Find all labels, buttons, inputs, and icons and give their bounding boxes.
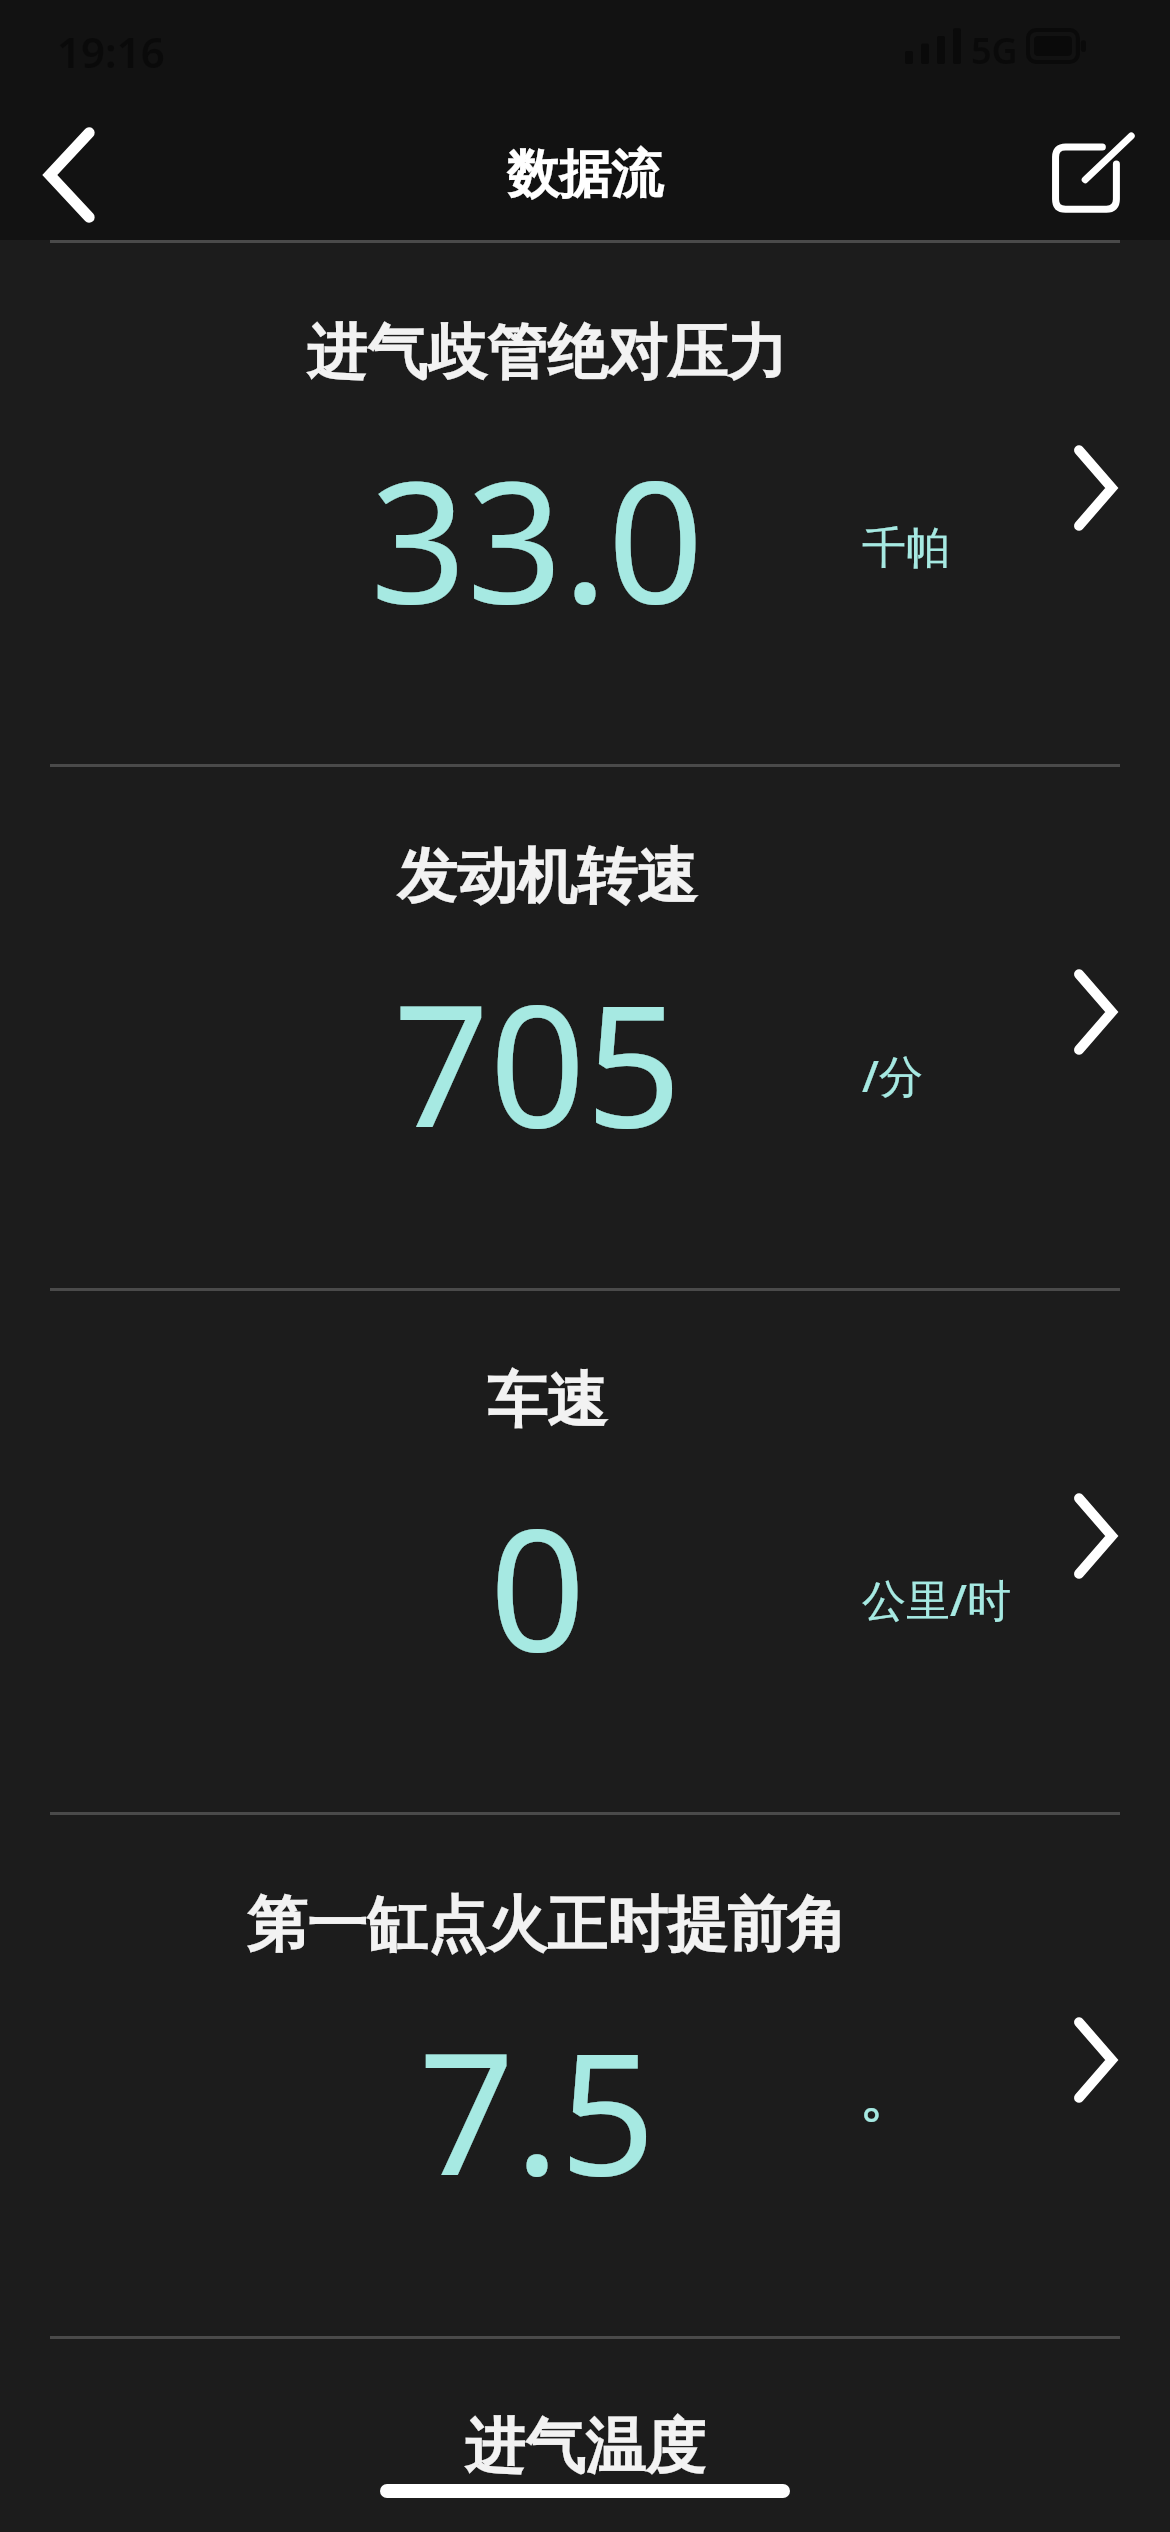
staticText: 第一缸点火正时提前角 bbox=[247, 1887, 847, 1963]
staticText: 进气歧管绝对压力 bbox=[307, 315, 787, 391]
staticText: 0 bbox=[489, 1471, 586, 1700]
staticText: ° bbox=[862, 2093, 881, 2153]
button[interactable]: 进气温度 bbox=[0, 2339, 1170, 2499]
button[interactable]: Back bbox=[14, 120, 124, 230]
staticText: 千帕 bbox=[862, 521, 950, 576]
staticText: 公里/时 bbox=[862, 1569, 1011, 1629]
button[interactable]: Details bbox=[1040, 957, 1150, 1067]
staticText: 7.5 bbox=[418, 1995, 656, 2224]
button[interactable]: 车速 bbox=[0, 1291, 1170, 1812]
button[interactable]: Details bbox=[1040, 2005, 1150, 2115]
staticText: /分 bbox=[862, 1045, 923, 1105]
staticText: 5G bbox=[971, 26, 1018, 66]
button[interactable]: Details bbox=[1040, 1481, 1150, 1591]
button[interactable]: 发动机转速 bbox=[0, 767, 1170, 1288]
button[interactable]: Details bbox=[1040, 433, 1150, 543]
button[interactable]: 第一缸点火正时提前角 bbox=[0, 1815, 1170, 2336]
staticText: 33.0 bbox=[370, 423, 704, 652]
staticText: 数据流 bbox=[507, 142, 663, 208]
staticText: 705 bbox=[393, 947, 682, 1176]
staticText: 车速 bbox=[487, 1363, 607, 1439]
staticText: 进气温度 bbox=[465, 2409, 705, 2485]
button[interactable]: 进气歧管绝对压力 bbox=[0, 243, 1170, 764]
button[interactable]: Edit bbox=[1038, 120, 1148, 230]
staticText: 发动机转速 bbox=[397, 839, 697, 915]
